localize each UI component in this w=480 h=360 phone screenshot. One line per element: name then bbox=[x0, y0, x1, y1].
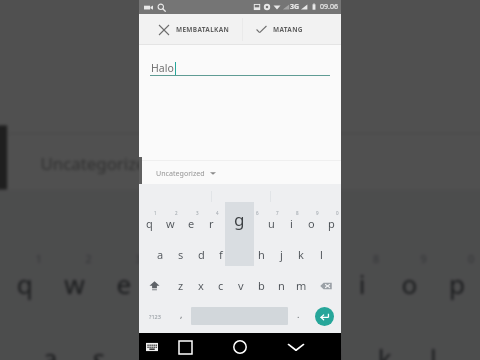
staticText: r bbox=[209, 216, 214, 231]
button[interactable]: f bbox=[211, 239, 231, 270]
button[interactable]: Home bbox=[230, 337, 250, 357]
button[interactable]: Space bbox=[191, 301, 288, 331]
staticText: MEMBATALKAN bbox=[176, 25, 230, 34]
button[interactable]: Backspace bbox=[311, 270, 341, 301]
button[interactable]: u bbox=[261, 208, 281, 239]
staticText: s bbox=[178, 247, 184, 262]
button[interactable]: h bbox=[266, 320, 314, 360]
staticText: 7 bbox=[276, 210, 279, 216]
staticText: d bbox=[198, 247, 205, 262]
button[interactable]: MATANG bbox=[243, 14, 341, 45]
button[interactable]: Hide keyboard bbox=[143, 338, 160, 355]
staticText: k bbox=[298, 247, 304, 262]
button[interactable]: b bbox=[251, 270, 271, 301]
button[interactable]: k bbox=[361, 320, 409, 360]
button[interactable]: Back bbox=[286, 337, 306, 357]
staticText: i bbox=[290, 216, 293, 231]
button[interactable]: k bbox=[291, 239, 311, 270]
button[interactable]: u bbox=[290, 246, 337, 320]
staticText: a bbox=[43, 339, 59, 360]
staticText: Uncategorized bbox=[156, 168, 205, 178]
button[interactable]: r bbox=[147, 246, 195, 320]
button[interactable]: h bbox=[251, 239, 271, 270]
staticText: d bbox=[140, 339, 157, 360]
staticText: w bbox=[166, 216, 175, 231]
staticText: o bbox=[402, 265, 418, 301]
staticText: 3G bbox=[290, 2, 300, 12]
button[interactable]: x bbox=[191, 270, 211, 301]
button[interactable]: w bbox=[160, 208, 181, 239]
staticText: f bbox=[219, 247, 223, 262]
button[interactable]: j bbox=[314, 320, 361, 360]
button[interactable]: g bbox=[231, 239, 251, 270]
staticText: t bbox=[214, 265, 223, 301]
button[interactable]: y bbox=[242, 246, 290, 320]
button[interactable]: Uncategorized bbox=[139, 161, 341, 184]
button[interactable]: p bbox=[321, 208, 341, 239]
button[interactable]: v bbox=[231, 270, 251, 301]
button[interactable]: f bbox=[171, 320, 219, 360]
staticText: l bbox=[320, 247, 323, 262]
button[interactable]: d bbox=[191, 239, 211, 270]
staticText: p bbox=[328, 216, 335, 231]
button[interactable]: a bbox=[150, 239, 171, 270]
button[interactable]: q bbox=[139, 208, 160, 239]
button[interactable]: r bbox=[201, 208, 221, 239]
button[interactable]: i bbox=[337, 246, 385, 320]
button[interactable]: o bbox=[301, 208, 321, 239]
staticText: q bbox=[146, 216, 153, 231]
button[interactable]: e bbox=[181, 208, 201, 239]
button[interactable]: Shift bbox=[139, 270, 170, 301]
button[interactable]: j bbox=[271, 239, 291, 270]
staticText: e bbox=[116, 265, 133, 301]
button[interactable]: t bbox=[221, 208, 241, 239]
button[interactable]: ?123 bbox=[139, 301, 171, 331]
staticText: , bbox=[180, 308, 183, 320]
staticText: h bbox=[283, 339, 299, 360]
button[interactable]: , bbox=[171, 301, 191, 331]
button[interactable]: o bbox=[385, 246, 432, 320]
button[interactable]: z bbox=[170, 270, 191, 301]
button[interactable]: s bbox=[171, 239, 191, 270]
button[interactable]: c bbox=[211, 270, 231, 301]
button[interactable]: Enter bbox=[315, 307, 334, 326]
button[interactable]: n bbox=[271, 270, 291, 301]
button[interactable]: Uncategorized bbox=[0, 135, 480, 189]
staticText: MATANG bbox=[273, 25, 303, 34]
button[interactable]: q bbox=[0, 246, 50, 320]
button[interactable]: a bbox=[26, 320, 76, 360]
button[interactable]: y bbox=[241, 208, 261, 239]
staticText: a bbox=[157, 247, 164, 262]
button[interactable]: l bbox=[311, 239, 331, 270]
button[interactable]: s bbox=[76, 320, 124, 360]
button[interactable]: m bbox=[291, 270, 311, 301]
staticText: ?123 bbox=[149, 313, 161, 320]
staticText: 4 bbox=[216, 210, 219, 216]
button[interactable]: e bbox=[100, 246, 147, 320]
staticText: o bbox=[308, 216, 315, 231]
button[interactable]: p bbox=[432, 246, 480, 320]
button[interactable]: t bbox=[195, 246, 242, 320]
button[interactable]: d bbox=[124, 320, 171, 360]
staticText: v bbox=[238, 278, 244, 293]
staticText: e bbox=[188, 216, 195, 231]
button[interactable]: MEMBATALKAN bbox=[139, 14, 242, 45]
staticText: 6 bbox=[278, 251, 285, 266]
button[interactable]: w bbox=[50, 246, 100, 320]
button[interactable]: l bbox=[409, 320, 456, 360]
button[interactable]: . bbox=[288, 301, 308, 331]
staticText: . bbox=[297, 308, 300, 320]
staticText: p bbox=[449, 265, 466, 301]
button[interactable]: Recents bbox=[175, 337, 195, 357]
staticText: b bbox=[258, 278, 265, 293]
staticText: l bbox=[430, 339, 437, 360]
button[interactable]: i bbox=[281, 208, 301, 239]
staticText: 3 bbox=[196, 210, 199, 216]
staticText: u bbox=[306, 265, 323, 301]
button[interactable]: g bbox=[219, 320, 266, 360]
staticText: 1 bbox=[154, 210, 157, 216]
